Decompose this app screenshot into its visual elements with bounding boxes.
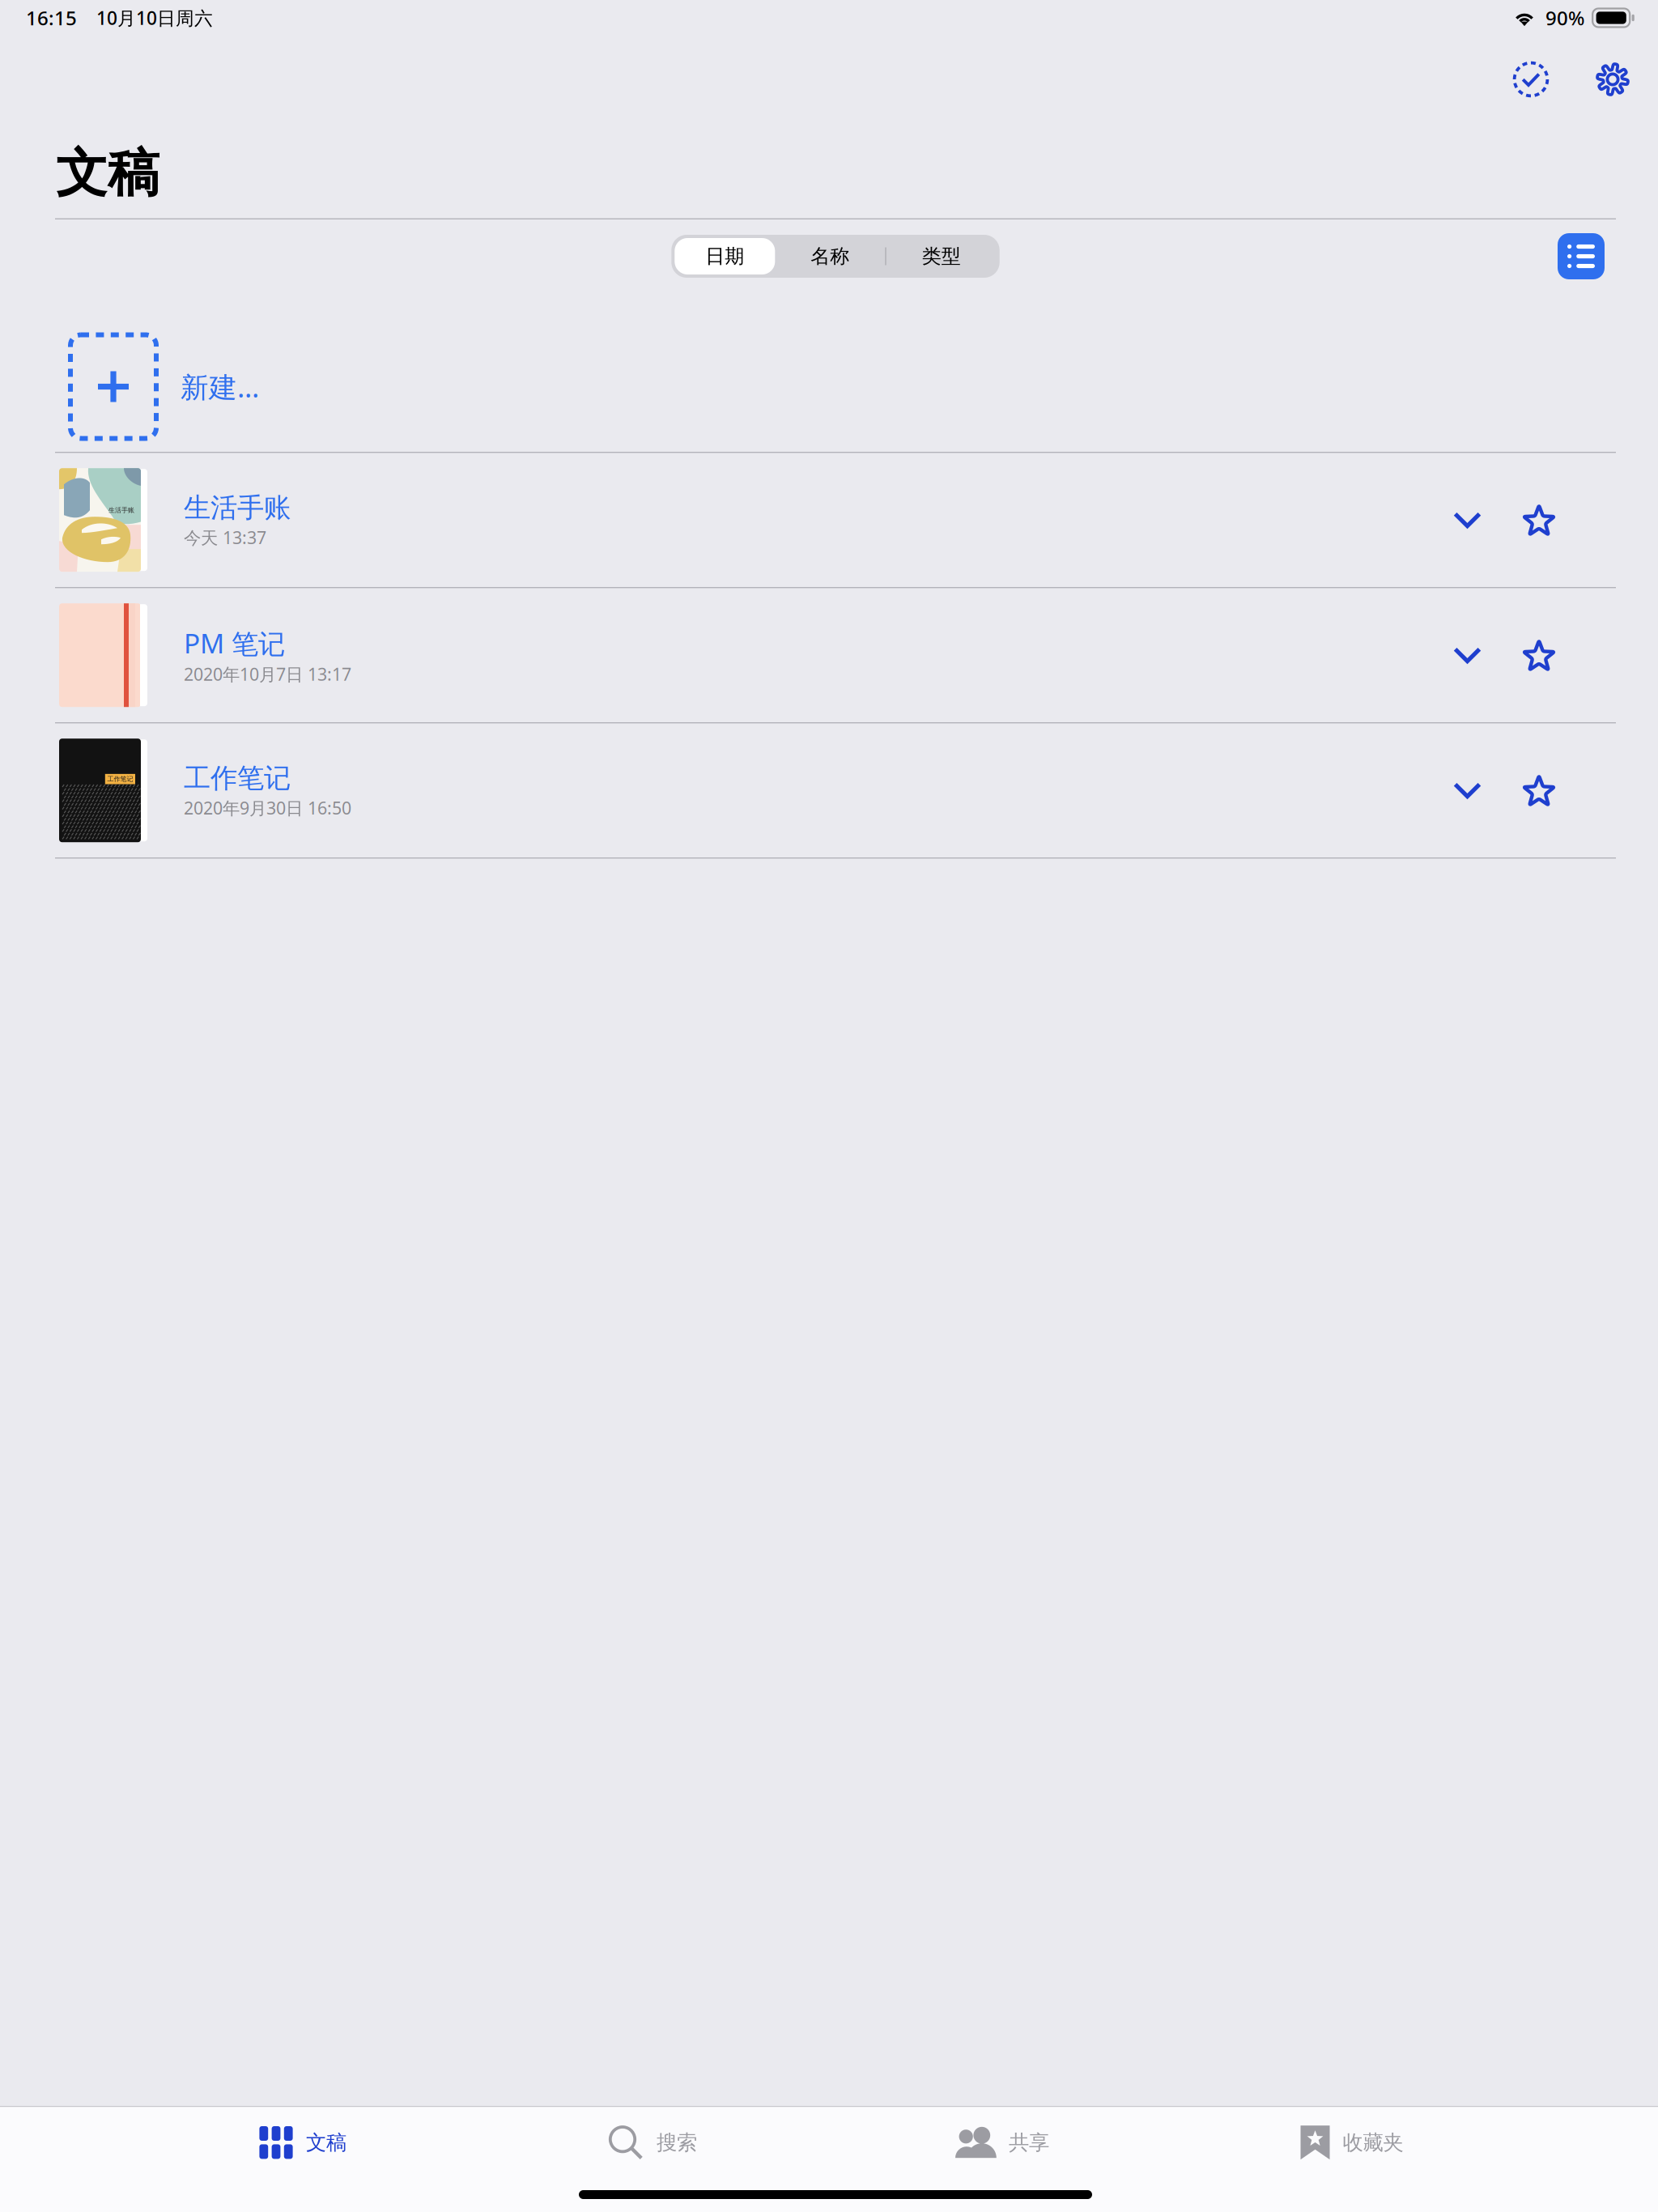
staticText: 类型: [922, 244, 961, 268]
staticText: 新建...: [181, 368, 259, 405]
button[interactable]: 列表视图: [1558, 233, 1605, 279]
staticText: 90%: [1545, 5, 1584, 31]
staticText: 今天 13:37: [184, 526, 266, 549]
staticText: 搜索: [657, 2130, 697, 2155]
staticText: 生活手账: [108, 506, 134, 514]
button[interactable]: 收藏: [1503, 755, 1575, 826]
staticText: PM 笔记: [184, 625, 285, 661]
staticText: 名称: [811, 244, 849, 268]
button[interactable]: 选择: [1499, 48, 1562, 111]
staticText: 文稿: [56, 142, 159, 205]
button[interactable]: 名称: [775, 238, 885, 274]
button[interactable]: 收藏: [1503, 484, 1575, 556]
button[interactable]: 更多: [1431, 624, 1504, 686]
staticText: 共享: [1009, 2130, 1049, 2155]
button[interactable]: 搜索: [478, 2107, 827, 2178]
button[interactable]: PM 笔记: [6, 588, 1658, 722]
button[interactable]: 生活手账: [6, 453, 1658, 587]
staticText: 10月10日周六: [96, 6, 213, 30]
button[interactable]: 文稿: [128, 2107, 478, 2178]
button[interactable]: 日期: [675, 238, 775, 274]
button[interactable]: 收藏: [1503, 620, 1575, 691]
staticText: 16:15: [26, 5, 77, 31]
staticText: 工作笔记: [107, 775, 133, 783]
staticText: 文稿: [306, 2130, 346, 2155]
staticText: 日期: [705, 244, 744, 268]
button[interactable]: 收藏夹: [1177, 2107, 1527, 2178]
button[interactable]: 设置: [1584, 50, 1642, 108]
staticText: 工作笔记: [184, 762, 291, 795]
staticText: 生活手账: [184, 491, 291, 524]
button[interactable]: 工作笔记: [6, 723, 1658, 857]
button[interactable]: 更多: [1431, 760, 1504, 821]
button[interactable]: 类型: [886, 238, 996, 274]
staticText: 2020年10月7日 13:17: [184, 663, 351, 685]
button[interactable]: 更多: [1431, 489, 1504, 551]
staticText: 收藏夹: [1343, 2130, 1403, 2155]
staticText: 2020年9月30日 16:50: [184, 796, 351, 819]
button[interactable]: 新建...: [6, 321, 1658, 452]
button[interactable]: 共享: [827, 2107, 1177, 2178]
